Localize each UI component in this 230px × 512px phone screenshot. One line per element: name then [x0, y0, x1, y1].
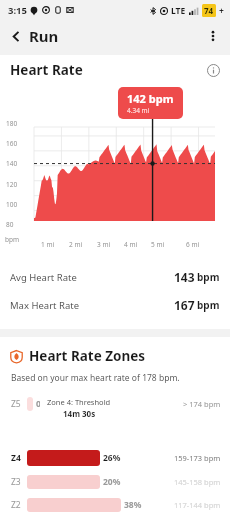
- staticText: 2 mi: [69, 240, 83, 249]
- staticText: Avg Heart Rate: [10, 271, 77, 284]
- staticText: 117-144 bpm: [174, 500, 221, 510]
- button[interactable]: Z3: [0, 474, 230, 489]
- staticText: 26%: [103, 452, 121, 464]
- staticText: 38%: [124, 499, 142, 511]
- staticText: Based on your max heart rate of 178 bpm.: [11, 372, 180, 384]
- staticText: 14m 30s: [63, 408, 96, 419]
- staticText: 6 mi: [186, 240, 200, 249]
- staticText: bpm: [197, 270, 220, 284]
- staticText: bpm: [5, 235, 20, 244]
- button[interactable]: Avg Heart Rate: [0, 263, 230, 291]
- button[interactable]: Z4: [0, 449, 230, 466]
- staticText: 5 mi: [151, 240, 165, 249]
- staticText: 159-173 bpm: [174, 453, 221, 463]
- staticText: > 174 bpm: [183, 399, 221, 409]
- staticText: +: [219, 5, 224, 17]
- staticText: Z5: [11, 398, 21, 410]
- staticText: Zone 4: Threshold: [47, 397, 111, 407]
- staticText: Heart Rate: [10, 61, 83, 79]
- staticText: 4.34 mi: [127, 106, 150, 115]
- staticText: LTE: [171, 5, 186, 17]
- staticText: Z4: [11, 452, 21, 464]
- staticText: 20%: [103, 476, 121, 488]
- staticText: Z2: [11, 499, 21, 511]
- staticText: 100: [6, 200, 18, 209]
- staticText: 142 bpm: [127, 91, 174, 106]
- staticText: Max Heart Rate: [10, 299, 80, 312]
- staticText: Z3: [11, 476, 21, 488]
- staticText: 74: [204, 5, 214, 16]
- staticText: 145-158 bpm: [174, 477, 221, 487]
- staticText: bpm: [197, 298, 220, 312]
- staticText: 160: [6, 139, 18, 148]
- staticText: 180: [6, 119, 18, 128]
- staticText: 0%: [36, 398, 49, 410]
- staticText: 143: [174, 269, 195, 285]
- button[interactable]: Z5: [0, 396, 230, 411]
- button[interactable]: Info: [204, 61, 222, 79]
- staticText: 1 mi: [41, 240, 55, 249]
- staticText: 3:15: [8, 4, 27, 17]
- staticText: 167: [174, 297, 195, 313]
- button[interactable]: More options: [202, 25, 224, 47]
- staticText: 4 mi: [124, 240, 138, 249]
- button[interactable]: Max Heart Rate: [0, 291, 230, 319]
- staticText: 3 mi: [97, 240, 111, 249]
- staticText: Heart Rate Zones: [29, 347, 146, 365]
- button[interactable]: Back: [6, 26, 26, 46]
- staticText: 140: [6, 159, 18, 168]
- staticText: 80: [6, 220, 14, 229]
- staticText: 120: [6, 180, 18, 189]
- staticText: Run: [29, 26, 59, 46]
- button[interactable]: Z2: [0, 497, 230, 512]
